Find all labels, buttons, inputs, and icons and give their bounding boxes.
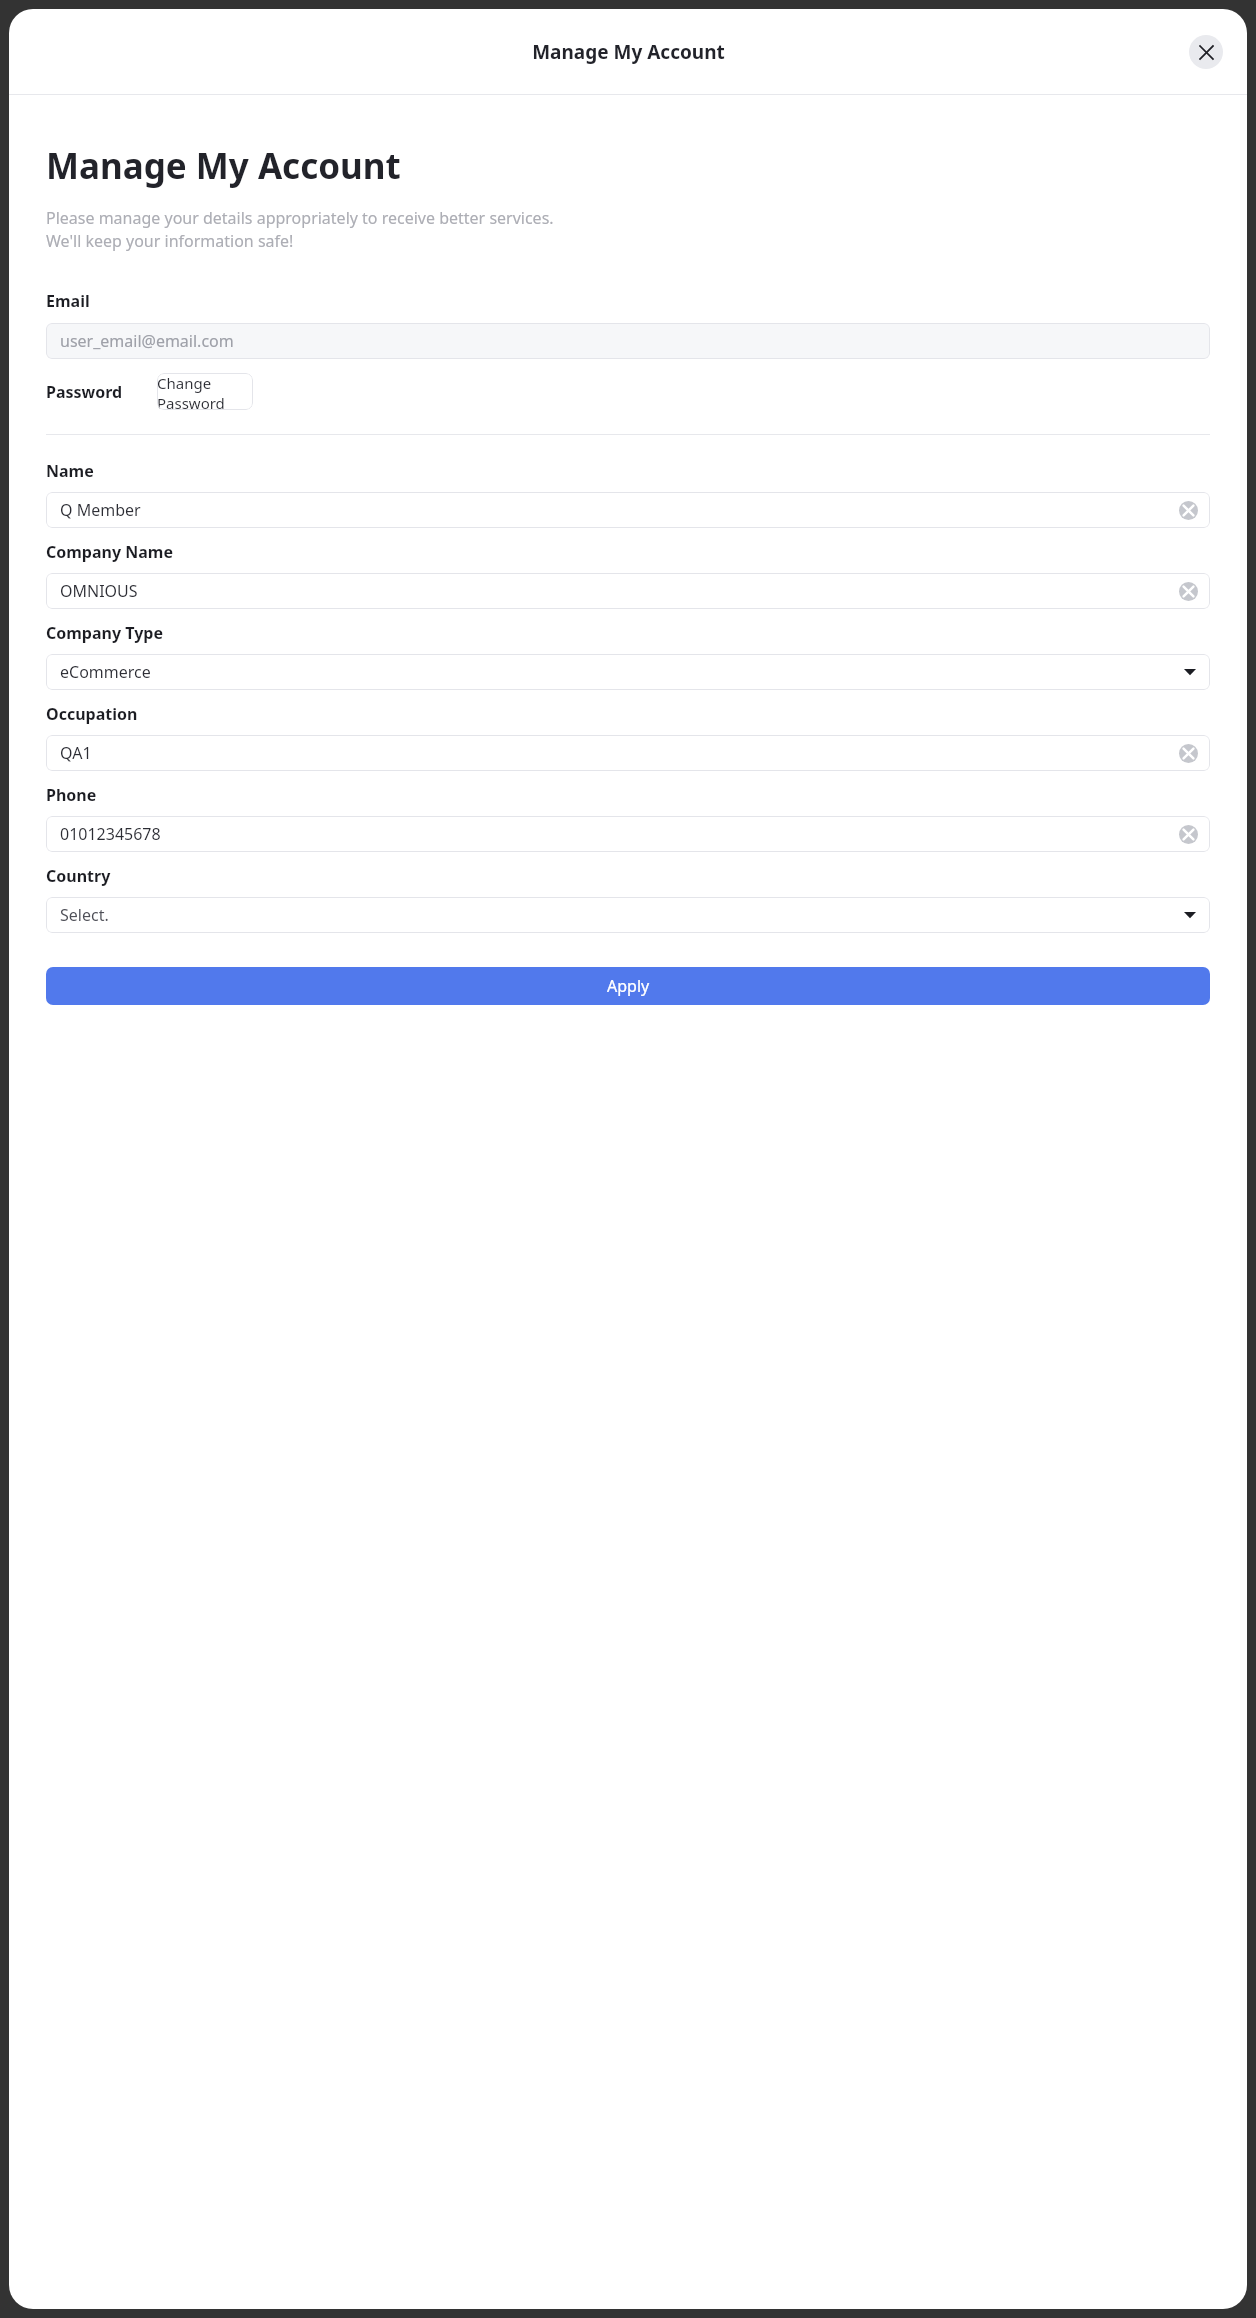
staticText: QA1 [60,742,92,764]
button[interactable]: Clear Name [1179,501,1198,520]
staticText: Country [46,865,111,887]
staticText: Manage My Account [46,142,401,190]
staticText: Change Password [157,373,253,410]
staticText: OMNIOUS [60,580,138,602]
staticText: Email [46,290,90,312]
button[interactable]: Q Member [46,492,1210,528]
staticText: Name [46,460,94,482]
button[interactable]: Clear Phone [1179,825,1198,844]
staticText: user_email@email.com [60,330,234,352]
staticText: Password [46,381,123,403]
button[interactable]: OMNIOUS [46,573,1210,609]
button[interactable]: QA1 [46,735,1210,771]
button[interactable]: user_email@email.com [46,323,1210,359]
staticText: Select. [60,904,109,926]
staticText: Occupation [46,703,138,725]
button[interactable]: Close [1189,35,1223,69]
staticText: 01012345678 [60,823,161,845]
button[interactable]: Country dropdown [46,897,1210,933]
staticText: Apply [607,975,650,997]
button[interactable]: Clear Occupation [1179,744,1198,763]
staticText: Manage My Account [532,39,725,65]
button[interactable]: Apply [46,967,1210,1005]
staticText: Company Name [46,541,174,563]
button[interactable]: Clear Company Name [1179,582,1198,601]
staticText: Q Member [60,499,141,521]
staticText: eCommerce [60,661,151,683]
button[interactable]: Company Type dropdown [46,654,1210,690]
staticText: Please manage your details appropriately… [46,207,554,252]
staticText: Phone [46,784,97,806]
button[interactable]: 01012345678 [46,816,1210,852]
staticText: Company Type [46,622,163,644]
button[interactable]: Change Password [157,373,253,410]
